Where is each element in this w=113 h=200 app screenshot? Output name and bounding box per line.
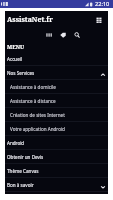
staticText: Votre application Android	[10, 126, 65, 132]
staticText: 22:10	[95, 0, 110, 8]
button[interactable]: Nos Services	[5, 66, 108, 80]
button[interactable]: Obtenir un Devis	[5, 150, 108, 164]
button[interactable]: Grid view	[96, 17, 102, 23]
staticText: Assistance à domicile	[10, 84, 56, 90]
staticText: Thème Canvas	[7, 168, 39, 174]
button[interactable]: Création de sites Internet	[5, 108, 108, 122]
staticText: Android	[7, 140, 25, 146]
staticText: Obtenir un Devis	[7, 154, 44, 160]
button[interactable]: Votre application Android	[5, 122, 108, 136]
staticText: Bon à savoir	[7, 182, 34, 188]
staticText: AssistaNet.fr	[7, 15, 53, 25]
button[interactable]: Bon à savoir	[5, 178, 108, 192]
staticText: Accueil	[7, 56, 23, 62]
staticText: Création de sites Internet	[10, 112, 65, 118]
staticText: Nos Services	[7, 70, 35, 76]
button[interactable]: Thème Canvas	[5, 164, 108, 178]
staticText: Assistance à distance	[10, 98, 56, 104]
button[interactable]: Assistance à distance	[5, 94, 108, 108]
button[interactable]: Accueil	[5, 52, 108, 66]
button[interactable]: Android	[5, 136, 108, 150]
button[interactable]: Assistance à domicile	[5, 80, 108, 94]
button[interactable]: Tags	[60, 32, 66, 38]
staticText: MENU	[7, 43, 24, 50]
button[interactable]: Search	[74, 32, 80, 38]
button[interactable]: Modules	[46, 32, 52, 38]
